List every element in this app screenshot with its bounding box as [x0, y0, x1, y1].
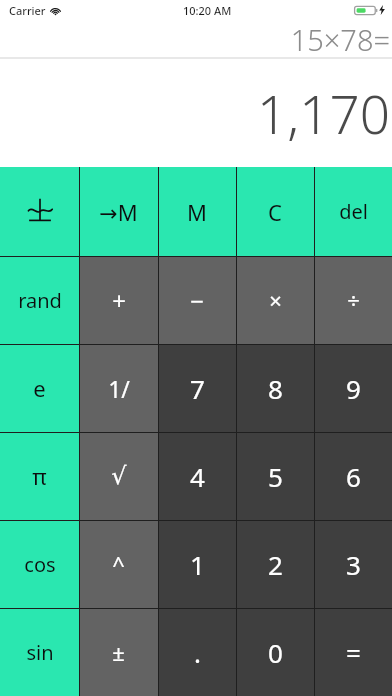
button[interactable]: = — [314, 608, 392, 696]
staticText: √ — [111, 462, 127, 490]
staticText: 1/ — [108, 373, 130, 404]
staticText: + — [112, 284, 126, 317]
staticText: C — [268, 197, 282, 227]
staticText: sin — [26, 639, 54, 666]
button[interactable]: × — [236, 256, 314, 344]
button[interactable]: 1 — [158, 520, 236, 608]
staticText: e — [33, 373, 46, 403]
button[interactable]: 2 — [236, 520, 314, 608]
button[interactable]: . — [158, 608, 236, 696]
button[interactable]: rand — [0, 256, 79, 344]
button[interactable]: Ground — [0, 167, 79, 256]
staticText: rand — [18, 287, 62, 314]
staticText: 15×78= — [290, 20, 390, 57]
staticText: cos — [24, 551, 56, 578]
button[interactable]: 1/ — [79, 344, 158, 432]
staticText: 4 — [190, 459, 205, 494]
staticText: × — [269, 285, 282, 315]
button[interactable]: 7 — [158, 344, 236, 432]
staticText: 1 — [190, 547, 205, 582]
staticText: 10:20 AM — [183, 3, 232, 18]
staticText: 3 — [346, 547, 361, 582]
staticText: π — [32, 461, 47, 491]
button[interactable]: sin — [0, 608, 79, 696]
staticText: del — [339, 198, 368, 225]
staticText: ^ — [112, 549, 125, 579]
button[interactable]: ^ — [79, 520, 158, 608]
button[interactable]: del — [314, 167, 392, 256]
button[interactable]: π — [0, 432, 79, 520]
button[interactable]: cos — [0, 520, 79, 608]
button[interactable]: − — [158, 256, 236, 344]
button[interactable]: 0 — [236, 608, 314, 696]
button[interactable]: 4 — [158, 432, 236, 520]
staticText: . — [194, 635, 201, 670]
button[interactable]: →M — [79, 167, 158, 256]
staticText: 2 — [268, 547, 283, 582]
button[interactable]: ÷ — [314, 256, 392, 344]
staticText: ± — [112, 637, 125, 667]
staticText: ÷ — [347, 285, 360, 315]
staticText: 8 — [268, 371, 283, 406]
button[interactable]: C — [236, 167, 314, 256]
staticText: 7 — [190, 371, 205, 406]
staticText: = — [346, 635, 361, 670]
button[interactable]: 9 — [314, 344, 392, 432]
button[interactable]: M — [158, 167, 236, 256]
button[interactable]: ± — [79, 608, 158, 696]
staticText: 9 — [346, 371, 361, 406]
staticText: Carrier — [9, 3, 46, 18]
staticText: 1,170 — [257, 77, 390, 149]
staticText: 6 — [346, 459, 361, 494]
button[interactable]: √ — [79, 432, 158, 520]
button[interactable]: 8 — [236, 344, 314, 432]
button[interactable]: e — [0, 344, 79, 432]
button[interactable]: 5 — [236, 432, 314, 520]
staticText: →M — [99, 197, 138, 227]
button[interactable]: 6 — [314, 432, 392, 520]
button[interactable]: 3 — [314, 520, 392, 608]
staticText: 0 — [268, 635, 283, 670]
staticText: 5 — [268, 459, 283, 494]
staticText: M — [187, 197, 207, 227]
staticText: − — [190, 284, 204, 317]
button[interactable]: + — [79, 256, 158, 344]
